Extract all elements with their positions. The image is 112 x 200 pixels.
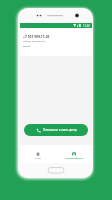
staticText: +7 101 599-11-25	[23, 34, 50, 38]
staticText: Любовь Дмитриевна	[23, 40, 46, 43]
button[interactable]: Выйти	[23, 45, 31, 48]
button[interactable]: Заказ	[20, 145, 56, 163]
other: Личный кабинет	[72, 152, 76, 156]
button[interactable]: Личный кабинет	[56, 145, 92, 163]
staticText: Личный кабинет	[65, 157, 83, 160]
staticText: Позвонить в колл-центр	[43, 128, 77, 132]
staticText: Заказ	[35, 157, 41, 160]
staticText: 12:30	[83, 24, 90, 28]
other: Заказ	[36, 152, 40, 156]
button[interactable]: Позвонить в колл-центр	[24, 124, 88, 136]
